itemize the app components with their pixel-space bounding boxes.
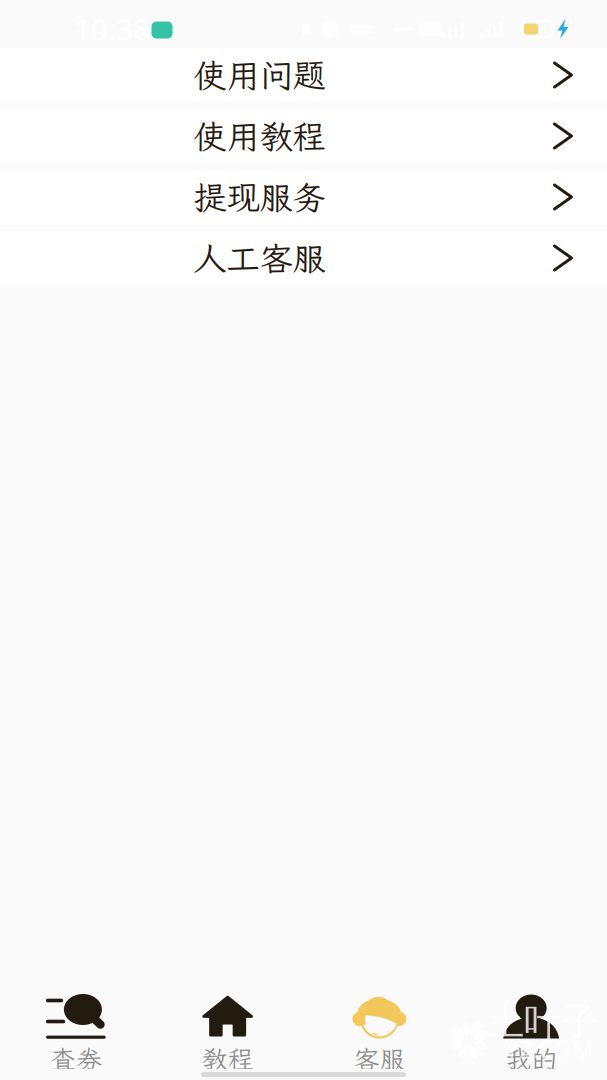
staticText: YZ.COM (505, 1033, 594, 1065)
button[interactable]: 使用教程 (0, 109, 607, 163)
staticText: 土叶子 (487, 999, 598, 1045)
button[interactable]: 使用问题 (0, 48, 607, 102)
staticText: 我的 (505, 1042, 557, 1076)
staticText: 人工客服 (193, 236, 325, 280)
button[interactable]: 人工客服 (0, 231, 607, 285)
button[interactable]: 客服 (303, 928, 455, 1069)
staticText: 提现服务 (193, 175, 325, 219)
staticText: 教程 (202, 1042, 254, 1076)
button[interactable]: 教程 (152, 928, 304, 1069)
staticText: 使用问题 (193, 53, 325, 97)
button[interactable]: 提现服务 (0, 170, 607, 224)
staticText: 客服 (353, 1042, 405, 1076)
staticText: 使用教程 (193, 114, 325, 158)
staticText: 查券 (50, 1042, 102, 1076)
button[interactable]: 查券 (0, 928, 152, 1069)
button[interactable]: 我的 (455, 928, 607, 1069)
